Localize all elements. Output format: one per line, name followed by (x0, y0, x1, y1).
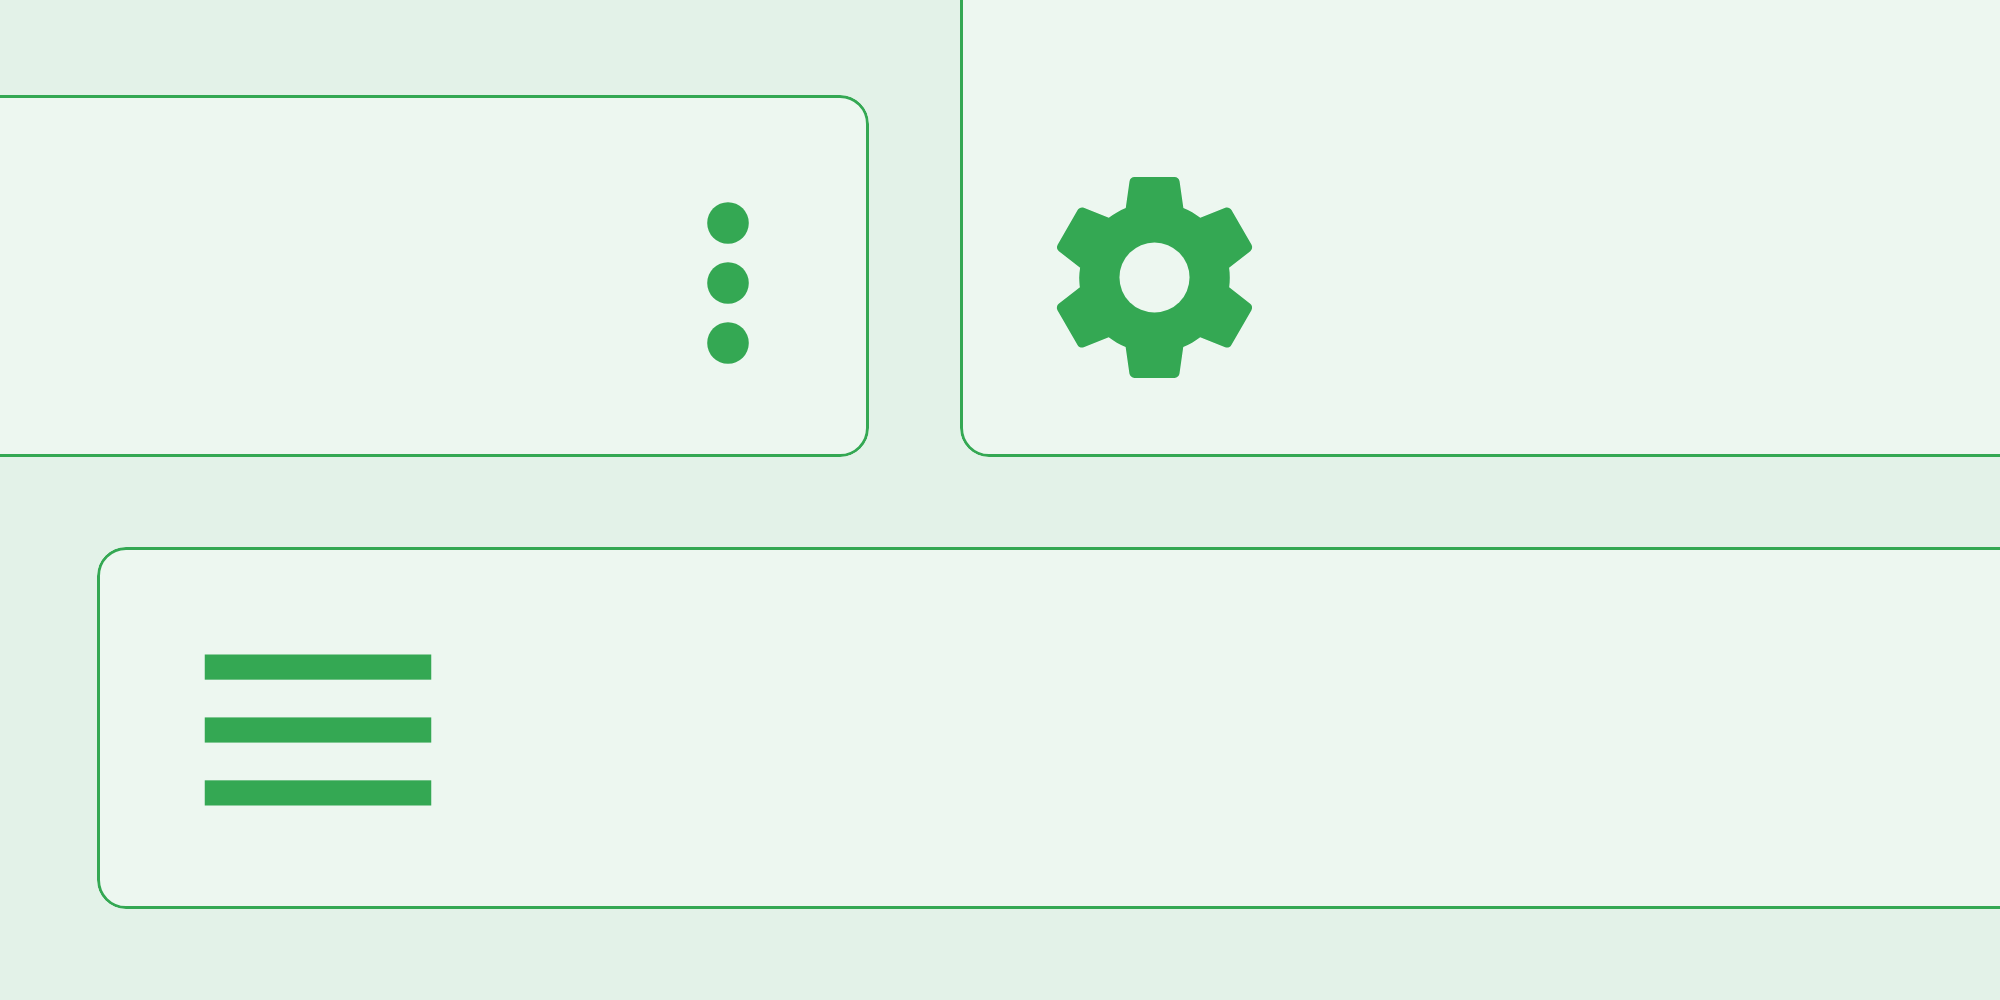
button[interactable]: Settings (1029, 152, 1280, 403)
button[interactable]: Preferences card (960, 0, 2000, 457)
button[interactable]: Menu (167, 579, 469, 881)
button[interactable]: More options (608, 163, 848, 403)
button[interactable]: Recent activity card (0, 95, 869, 457)
button[interactable]: All categories card (97, 547, 2000, 909)
